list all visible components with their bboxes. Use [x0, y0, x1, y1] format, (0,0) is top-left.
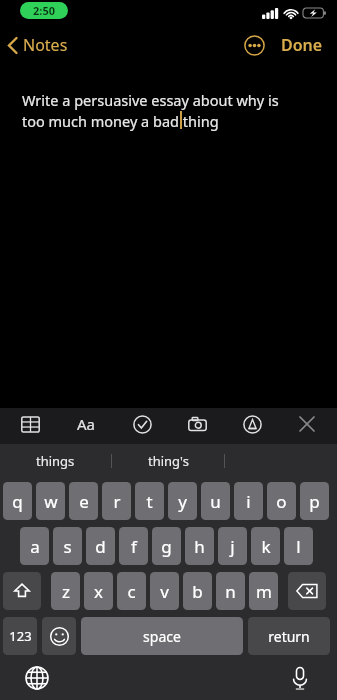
- staticText: y: [178, 490, 187, 513]
- button[interactable]: y: [168, 482, 197, 520]
- staticText: m: [256, 580, 272, 603]
- button[interactable]: v: [150, 572, 179, 610]
- button[interactable]: Done: [277, 30, 327, 60]
- button[interactable]: Close: [291, 408, 323, 440]
- button[interactable]: Camera: [181, 408, 213, 440]
- staticText: v: [160, 580, 169, 603]
- staticText: t: [146, 490, 153, 513]
- button[interactable]: h: [185, 527, 214, 565]
- staticText: things: [36, 452, 75, 470]
- staticText: o: [276, 490, 287, 513]
- staticText: a: [30, 535, 40, 558]
- staticText: z: [62, 580, 70, 603]
- button[interactable]: space: [81, 617, 243, 655]
- button[interactable]: s: [53, 527, 82, 565]
- button[interactable]: thing's: [112, 444, 224, 477]
- button[interactable]: things: [0, 444, 111, 477]
- staticText: l: [296, 535, 301, 558]
- button[interactable]: b: [183, 572, 212, 610]
- staticText: i: [246, 490, 251, 513]
- staticText: Aa: [77, 414, 96, 434]
- staticText: return: [268, 627, 310, 646]
- staticText: r: [113, 490, 121, 513]
- button[interactable]: e: [69, 482, 98, 520]
- staticText: x: [94, 580, 103, 603]
- button[interactable]: k: [251, 527, 280, 565]
- button[interactable]: More options: [239, 30, 269, 60]
- button[interactable]: Emoji: [42, 617, 76, 655]
- button[interactable]: d: [86, 527, 115, 565]
- button[interactable]: c: [117, 572, 146, 610]
- button[interactable]: return: [248, 617, 330, 655]
- staticText: n: [225, 580, 236, 603]
- staticText: w: [44, 490, 58, 513]
- staticText: 123: [9, 627, 32, 645]
- staticText: space: [143, 627, 181, 646]
- button[interactable]: Notes: [0, 30, 76, 60]
- staticText: Notes: [23, 34, 68, 56]
- button[interactable]: Checklist: [126, 408, 158, 440]
- staticText: 2:50: [33, 3, 55, 18]
- staticText: d: [95, 535, 106, 558]
- button[interactable]: i: [234, 482, 263, 520]
- button[interactable]: p: [300, 482, 329, 520]
- staticText: u: [210, 490, 221, 513]
- staticText: thing's: [148, 452, 189, 470]
- staticText: p: [309, 490, 320, 513]
- button[interactable]: w: [36, 482, 65, 520]
- button[interactable]: z: [51, 572, 80, 610]
- staticText: s: [63, 535, 72, 558]
- button[interactable]: l: [284, 527, 313, 565]
- button[interactable]: u: [201, 482, 230, 520]
- button[interactable]: Dictation: [285, 663, 315, 693]
- staticText: j: [230, 535, 235, 558]
- button[interactable]: j: [218, 527, 247, 565]
- staticText: Done: [281, 34, 323, 56]
- staticText: b: [192, 580, 203, 603]
- button[interactable]: Shift: [3, 572, 41, 610]
- button[interactable]: Change keyboard language: [22, 663, 52, 693]
- button[interactable]: o: [267, 482, 296, 520]
- staticText: q: [12, 490, 23, 513]
- button[interactable]: Markup: [236, 408, 268, 440]
- button[interactable]: Backspace: [288, 572, 326, 610]
- button[interactable]: g: [152, 527, 181, 565]
- staticText: c: [127, 580, 136, 603]
- staticText: k: [261, 535, 271, 558]
- button[interactable]: t: [135, 482, 164, 520]
- button[interactable]: Text format: [70, 408, 102, 440]
- staticText: Write a persuasive essay about why is to…: [22, 90, 288, 132]
- staticText: e: [79, 490, 89, 513]
- button[interactable]: r: [102, 482, 131, 520]
- button[interactable]: m: [249, 572, 278, 610]
- staticText: h: [194, 535, 205, 558]
- button[interactable]: n: [216, 572, 245, 610]
- button[interactable]: f: [119, 527, 148, 565]
- button[interactable]: Table: [14, 408, 46, 440]
- button[interactable]: q: [3, 482, 32, 520]
- button[interactable]: x: [84, 572, 113, 610]
- staticText: f: [131, 535, 137, 558]
- staticText: g: [161, 535, 172, 558]
- button[interactable]: a: [20, 527, 49, 565]
- button[interactable]: 123: [3, 617, 37, 655]
